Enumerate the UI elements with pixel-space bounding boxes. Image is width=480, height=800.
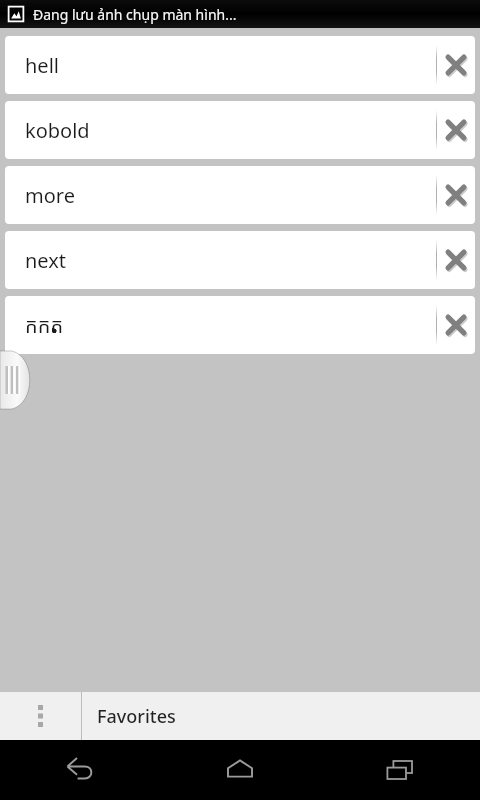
button[interactable]: Delete hell [437,36,475,94]
button[interactable]: More options [0,692,81,740]
staticText: កកត [25,312,64,339]
staticText: more [25,182,75,209]
button[interactable]: Back [0,740,160,800]
button[interactable]: Favorites [82,692,480,740]
button[interactable]: Delete next [437,231,475,289]
staticText: kobold [25,117,90,144]
button[interactable]: hell [5,36,475,94]
button[interactable]: Delete កកត [437,296,475,354]
staticText: Đang lưu ảnh chụp màn hình... [33,5,237,24]
button[interactable]: Recent apps [320,740,480,800]
button[interactable]: Home [160,740,320,800]
staticText: next [25,247,67,274]
button[interactable]: kobold [5,101,475,159]
button[interactable]: Delete more [437,166,475,224]
button[interactable]: next [5,231,475,289]
button[interactable]: កកត [5,296,475,354]
button[interactable]: Delete kobold [437,101,475,159]
button[interactable]: Open drawer [0,351,34,409]
button[interactable]: more [5,166,475,224]
staticText: hell [25,52,59,79]
staticText: Favorites [97,704,176,729]
